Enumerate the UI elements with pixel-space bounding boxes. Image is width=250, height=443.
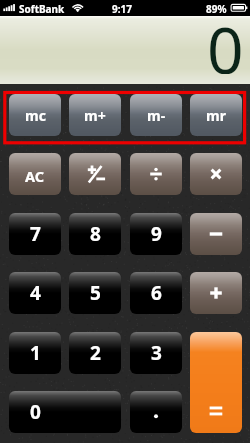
staticText: m-: [147, 106, 166, 125]
staticText: 7: [30, 221, 41, 247]
button[interactable]: 6: [130, 272, 182, 314]
staticText: 6: [151, 280, 162, 306]
button[interactable]: mr: [190, 94, 242, 136]
staticText: 89%: [206, 2, 227, 16]
button[interactable]: Divide: [130, 153, 182, 195]
button[interactable]: m+: [69, 94, 121, 136]
staticText: 9: [151, 221, 162, 247]
button[interactable]: Plus: [190, 272, 242, 314]
button[interactable]: 3: [130, 332, 182, 374]
button[interactable]: AC: [9, 153, 61, 195]
button[interactable]: Equals: [190, 332, 242, 433]
staticText: mr: [206, 106, 226, 125]
staticText: 1: [30, 340, 41, 366]
staticText: 2: [90, 340, 101, 366]
button[interactable]: mc: [9, 94, 61, 136]
staticText: AC: [25, 166, 45, 186]
button[interactable]: 9: [130, 213, 182, 255]
button[interactable]: 7: [9, 213, 61, 255]
button[interactable]: Minus: [190, 213, 242, 255]
button[interactable]: 1: [9, 332, 61, 374]
button[interactable]: 2: [69, 332, 121, 374]
staticText: 4: [30, 280, 41, 306]
staticText: 0: [207, 6, 244, 74]
staticText: 9:17: [112, 2, 132, 16]
staticText: 8: [90, 221, 101, 247]
button[interactable]: Multiply: [190, 153, 242, 195]
button[interactable]: 4: [9, 272, 61, 314]
staticText: 5: [90, 280, 101, 306]
staticText: 0: [30, 399, 41, 425]
staticText: m+: [84, 106, 106, 125]
button[interactable]: 5: [69, 272, 121, 314]
button[interactable]: m-: [130, 94, 182, 136]
button[interactable]: Decimal point: [130, 391, 182, 433]
button[interactable]: Plus minus: [69, 153, 121, 195]
staticText: mc: [25, 106, 46, 125]
staticText: SoftBank: [19, 2, 65, 16]
staticText: 3: [151, 340, 162, 366]
button[interactable]: 8: [69, 213, 121, 255]
button[interactable]: 0: [9, 391, 121, 433]
